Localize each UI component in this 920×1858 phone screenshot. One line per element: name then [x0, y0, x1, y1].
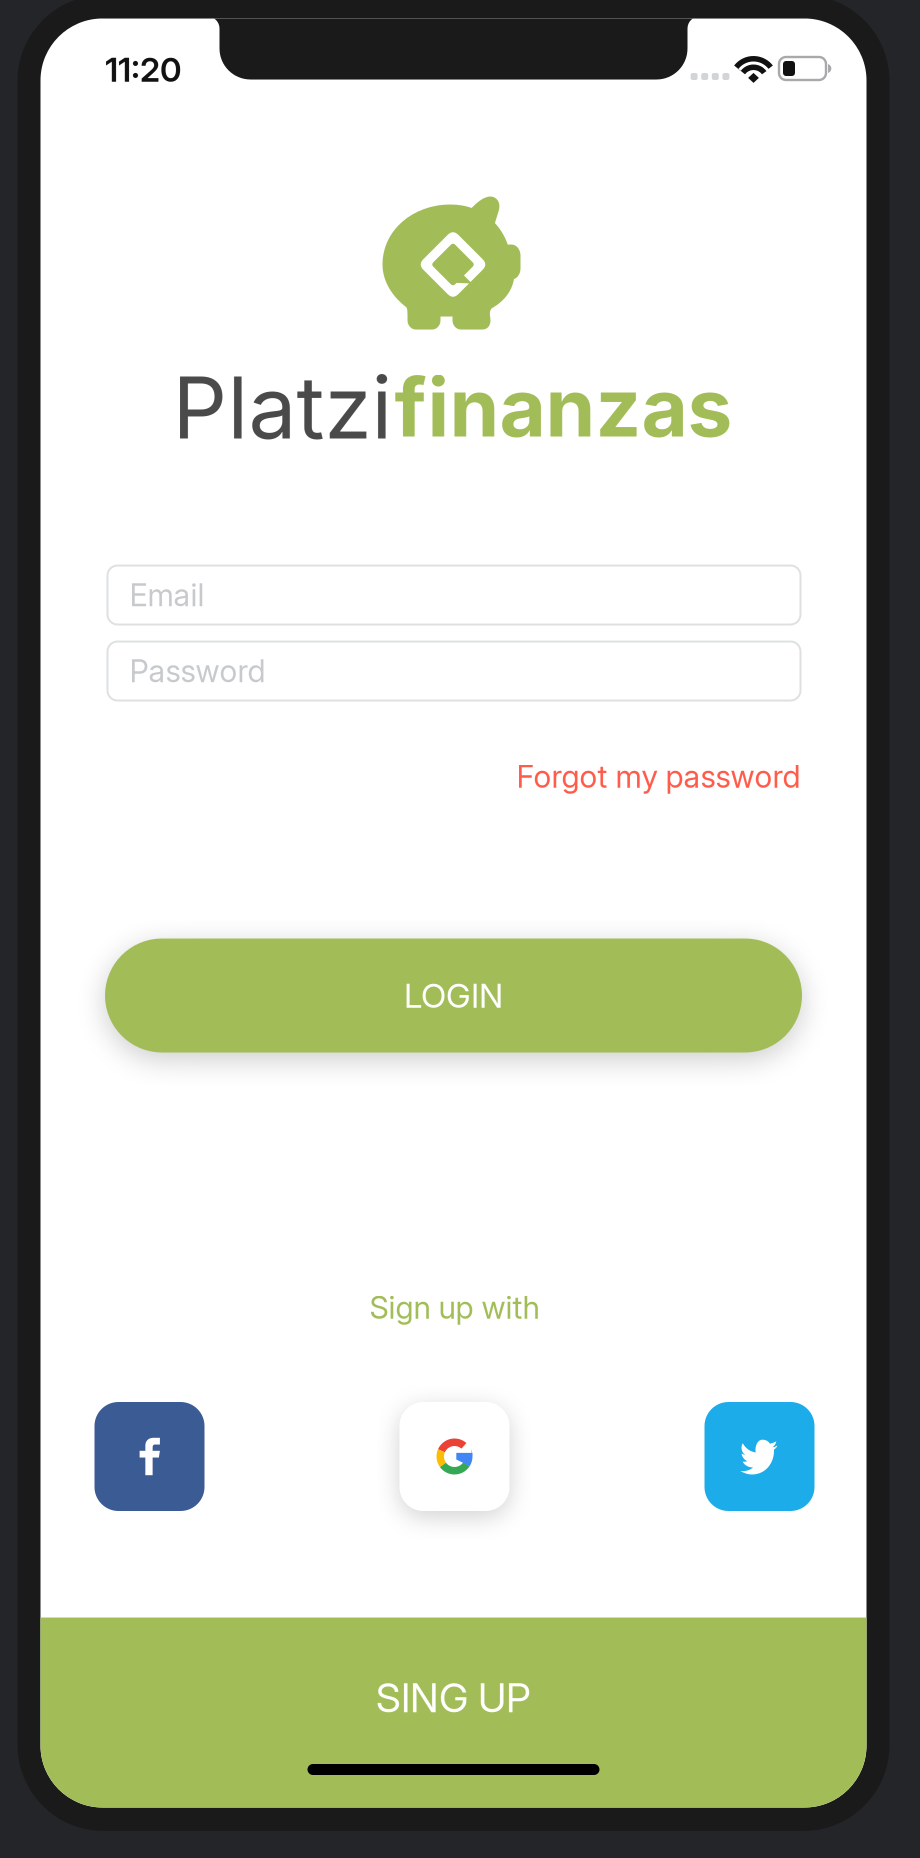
button[interactable]: Sign up with Facebook [94, 1402, 204, 1511]
button[interactable]: Sign up with Google [399, 1402, 509, 1511]
staticText: LOGIN [404, 975, 503, 1016]
button[interactable]: Sign up with Twitter [704, 1402, 814, 1511]
staticText: finanzas [394, 359, 732, 456]
staticText: Password [129, 652, 265, 689]
button[interactable]: Forgot my password [107, 752, 800, 800]
staticText: SING UP [376, 1673, 531, 1722]
staticText: Platzi [172, 356, 392, 459]
staticText: 11:20 [105, 49, 182, 90]
staticText: Email [129, 576, 204, 613]
button[interactable]: LOGIN [105, 938, 802, 1052]
button[interactable]: SING UP [40, 1617, 866, 1807]
staticText: Sign up with [369, 1289, 539, 1326]
staticText: Forgot my password [516, 758, 800, 795]
